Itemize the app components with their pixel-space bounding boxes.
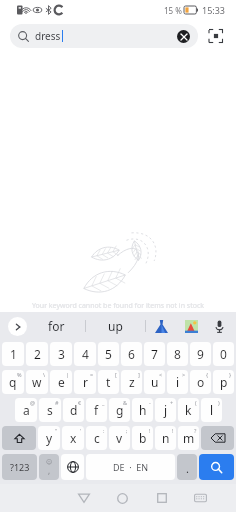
button[interactable]: ☺	[39, 454, 59, 480]
staticText: f	[94, 402, 99, 418]
staticText: 15 %	[164, 5, 182, 16]
staticText: for	[48, 318, 65, 334]
button[interactable]: Voice input	[206, 312, 232, 340]
staticText: _	[102, 399, 105, 406]
button[interactable]: 0	[213, 342, 234, 366]
staticText: l	[210, 402, 214, 418]
button[interactable]: 7	[144, 342, 165, 366]
button[interactable]: Back	[64, 484, 103, 512]
staticText: dress	[35, 29, 61, 43]
button[interactable]	[2, 426, 36, 450]
button[interactable]	[61, 454, 84, 480]
button[interactable]: for	[27, 312, 85, 340]
staticText: >	[182, 371, 186, 378]
button[interactable]: .	[177, 454, 197, 480]
staticText: 0	[220, 346, 227, 362]
button[interactable]: 5	[98, 342, 119, 366]
button[interactable]: Clear	[177, 30, 190, 43]
staticText: ?123	[10, 461, 30, 473]
button[interactable]: r	[74, 370, 96, 394]
button[interactable]: 2	[26, 342, 48, 366]
staticText: [	[115, 371, 117, 378]
staticText: k	[185, 402, 192, 418]
button[interactable]: v	[109, 426, 130, 450]
button[interactable]: b	[132, 426, 153, 450]
button[interactable]: c	[86, 426, 107, 450]
button[interactable]: up	[86, 312, 145, 340]
staticText: e	[58, 374, 65, 390]
button[interactable]: a	[15, 398, 37, 422]
staticText: g	[116, 402, 124, 418]
button[interactable]: Home	[103, 484, 142, 512]
button[interactable]: x	[62, 426, 84, 450]
staticText: up	[108, 318, 123, 334]
button[interactable]: m	[178, 426, 199, 450]
button[interactable]: u	[144, 370, 165, 394]
button[interactable]: 4	[74, 342, 96, 366]
staticText: y	[46, 430, 53, 446]
staticText: 1	[10, 346, 17, 362]
button[interactable]: 8	[167, 342, 188, 366]
button[interactable]: dress	[10, 24, 198, 48]
button[interactable]: 3	[50, 342, 72, 366]
button[interactable]: Hide keyboard	[181, 484, 220, 512]
button[interactable]: DE · EN	[86, 454, 175, 480]
staticText: ]	[138, 371, 140, 378]
staticText: i	[176, 374, 180, 390]
staticText: }	[229, 371, 232, 378]
staticText: t	[106, 374, 111, 390]
button[interactable]: Art emoji	[176, 312, 206, 340]
button[interactable]: Dress emoji	[146, 312, 176, 340]
staticText: o	[197, 374, 205, 390]
button[interactable]: p	[213, 370, 234, 394]
button[interactable]: t	[98, 370, 119, 394]
button[interactable]: o	[190, 370, 211, 394]
button[interactable]: l	[201, 398, 222, 422]
button[interactable]: Recent apps	[142, 484, 181, 512]
staticText: @	[30, 399, 35, 406]
button[interactable]: ?123	[2, 454, 37, 480]
button[interactable]: s	[39, 398, 61, 422]
button[interactable]: e	[50, 370, 72, 394]
button[interactable]	[201, 426, 234, 450]
button[interactable]: n	[155, 426, 176, 450]
button[interactable]: y	[38, 426, 60, 450]
staticText: j	[164, 402, 168, 418]
button[interactable]: z	[121, 370, 142, 394]
staticText: !	[149, 427, 151, 434]
button[interactable]: 6	[121, 342, 142, 366]
button[interactable]: j	[155, 398, 176, 422]
button[interactable]: q	[2, 370, 24, 394]
button[interactable]: k	[178, 398, 199, 422]
button[interactable]: g	[109, 398, 130, 422]
staticText: ;	[126, 427, 128, 434]
button[interactable]: i	[167, 370, 188, 394]
staticText: d	[70, 402, 78, 418]
staticText: h	[139, 402, 147, 418]
staticText: %	[17, 371, 22, 378]
staticText: €	[78, 399, 82, 406]
staticText: x	[70, 430, 77, 446]
staticText: |	[66, 371, 70, 378]
button[interactable]: More suggestions	[8, 317, 27, 336]
staticText: \	[43, 371, 46, 378]
button[interactable]: 9	[190, 342, 211, 366]
button[interactable]: w	[26, 370, 48, 394]
button[interactable]: d	[63, 398, 84, 422]
staticText: :	[103, 427, 105, 434]
staticText: n	[162, 430, 170, 446]
button[interactable]: 1	[2, 342, 24, 366]
button[interactable]: f	[86, 398, 107, 422]
staticText: s	[47, 402, 53, 418]
staticText: 6	[128, 346, 135, 362]
staticText: {	[206, 371, 209, 378]
button[interactable]: Scan with camera	[206, 26, 226, 46]
staticText: 3	[58, 346, 65, 362]
staticText: &	[123, 399, 128, 406]
button[interactable]	[199, 454, 234, 480]
staticText: .	[186, 461, 189, 476]
staticText: z	[129, 374, 135, 390]
staticText: =	[90, 371, 94, 378]
staticText: u	[151, 374, 159, 390]
button[interactable]: h	[132, 398, 153, 422]
